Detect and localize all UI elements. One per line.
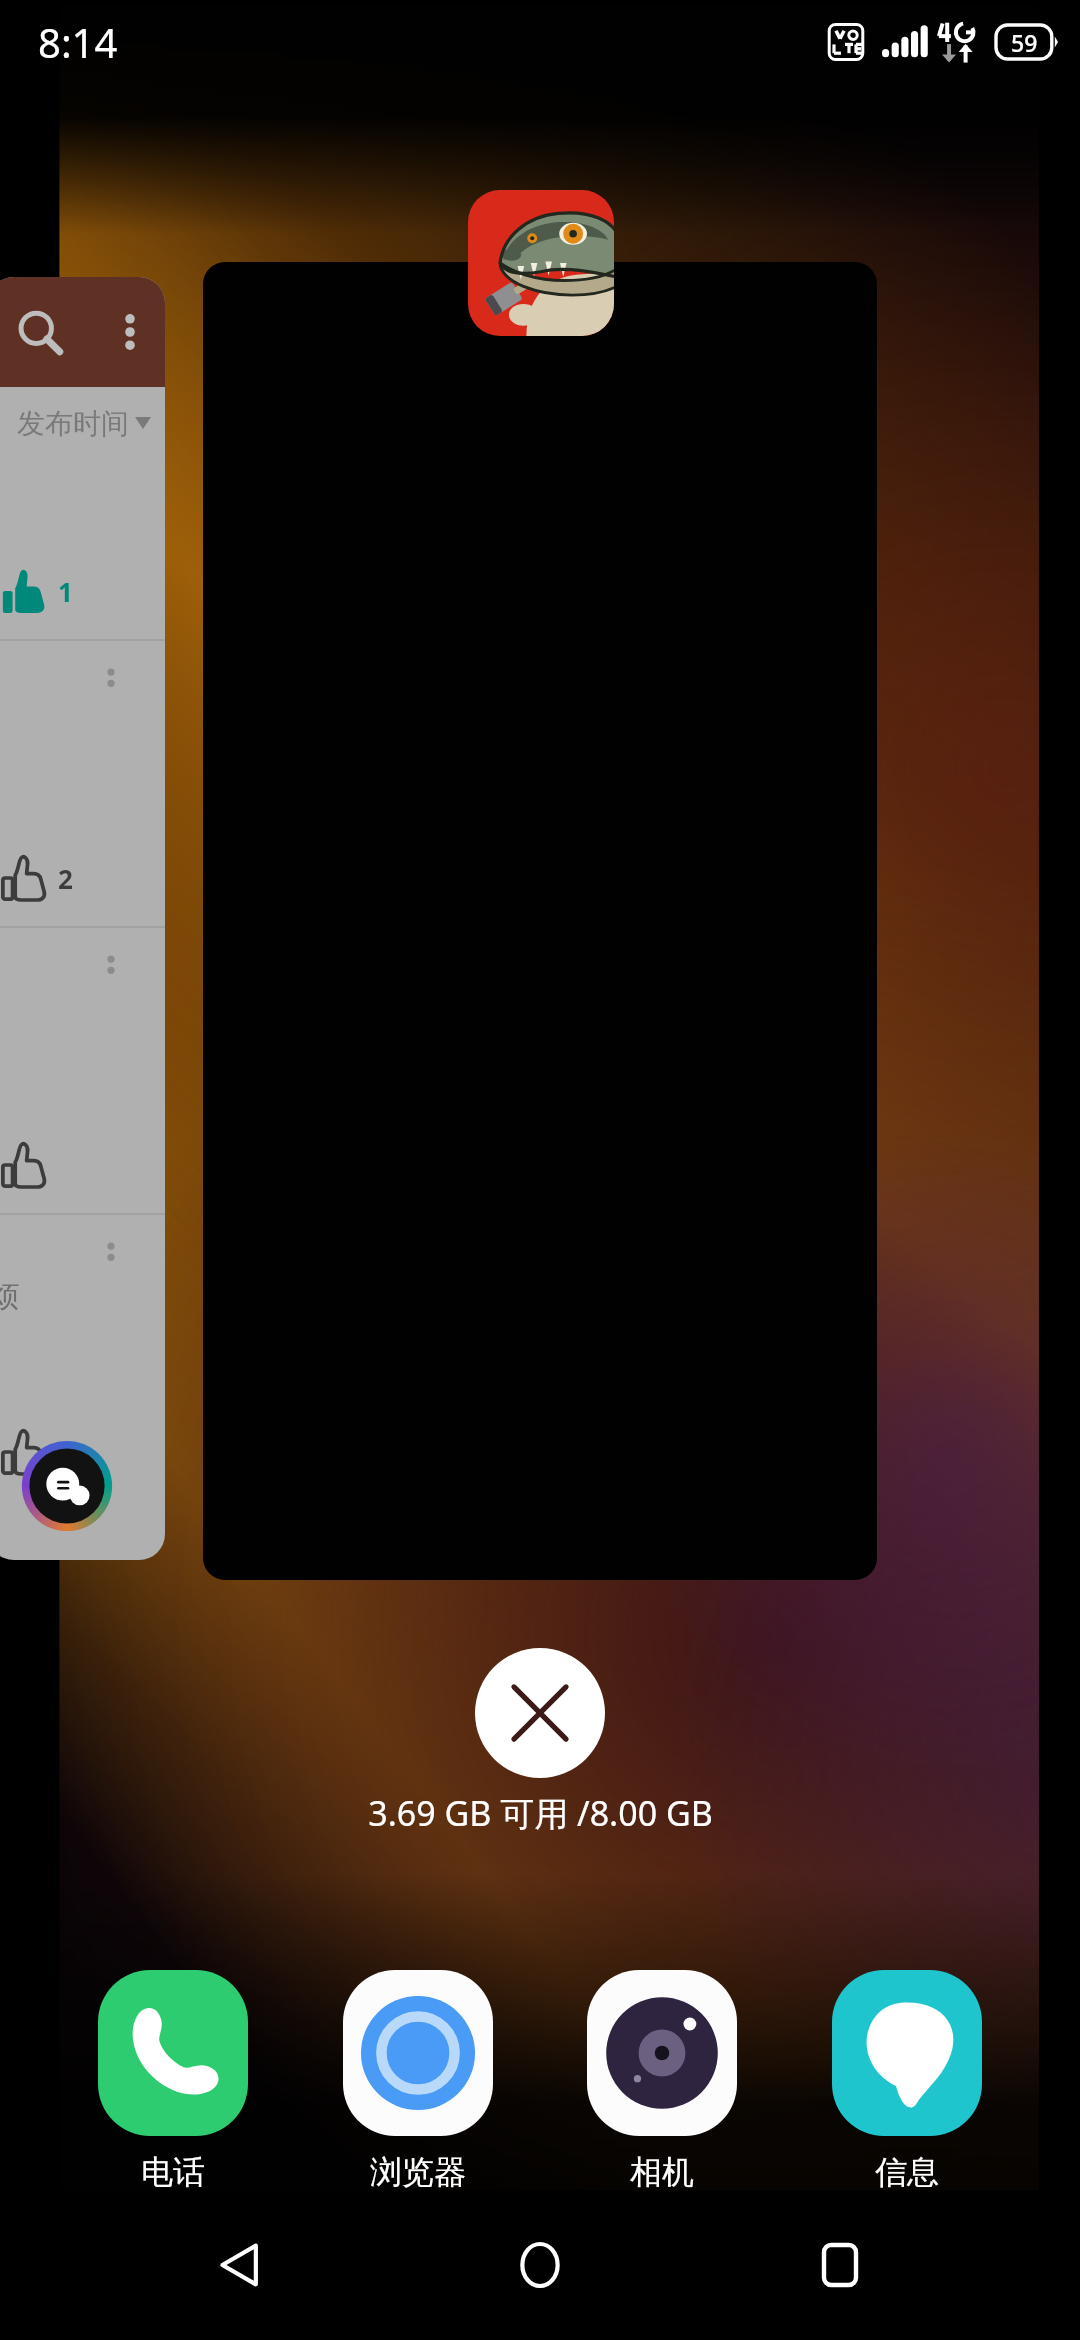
button[interactable]: App icon [468,190,614,336]
staticText: 浏览器 [370,2152,466,2192]
button[interactable]: Clear all recent apps [475,1648,605,1778]
staticText: 59 [1011,27,1038,58]
staticText: 信息 [875,2152,939,2192]
staticText: 烦 [0,1277,20,1315]
button[interactable] [0,928,165,1213]
button[interactable]: 烦 [0,1215,165,1500]
button[interactable]: 电话 [78,1970,268,2192]
button[interactable]: 信息 [812,1970,1002,2192]
button[interactable]: 发布时间 [0,277,165,1560]
button[interactable]: Recent apps [780,2205,900,2325]
button[interactable]: Back [180,2205,300,2325]
staticText: 电话 [141,2152,205,2192]
staticText: 相机 [630,2152,694,2192]
staticText: 1 [58,1435,73,1470]
staticText: 2 [58,861,73,896]
staticText: 发布时间 [17,406,129,441]
staticText: 3.69 GB 可用 /8.00 GB [368,1790,713,1836]
staticText: 8:14 [38,15,118,69]
button[interactable]: 2 [0,641,165,926]
button[interactable]: 1 [0,459,165,639]
button[interactable]: Recent task preview [203,262,877,1580]
button[interactable]: 浏览器 [323,1970,513,2192]
staticText: 1 [58,574,73,609]
button[interactable]: 相机 [567,1970,757,2192]
button[interactable]: Home [480,2205,600,2325]
